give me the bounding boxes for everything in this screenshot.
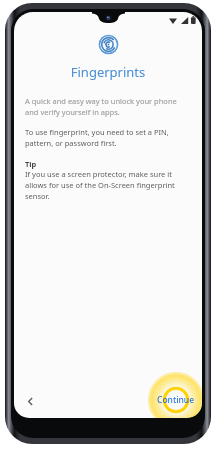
staticText: To use fingerprint, you need to set a PI… [25, 127, 191, 148]
staticText: If you use a screen protector, make sure… [25, 169, 191, 201]
staticText: Tip [25, 159, 37, 169]
staticText: Fingerprints [25, 63, 191, 81]
staticText: Continue [157, 394, 195, 406]
staticText: A quick and easy way to unlock your phon… [25, 96, 191, 117]
button[interactable]: Continue [155, 392, 197, 408]
button[interactable]: Back [19, 390, 41, 412]
